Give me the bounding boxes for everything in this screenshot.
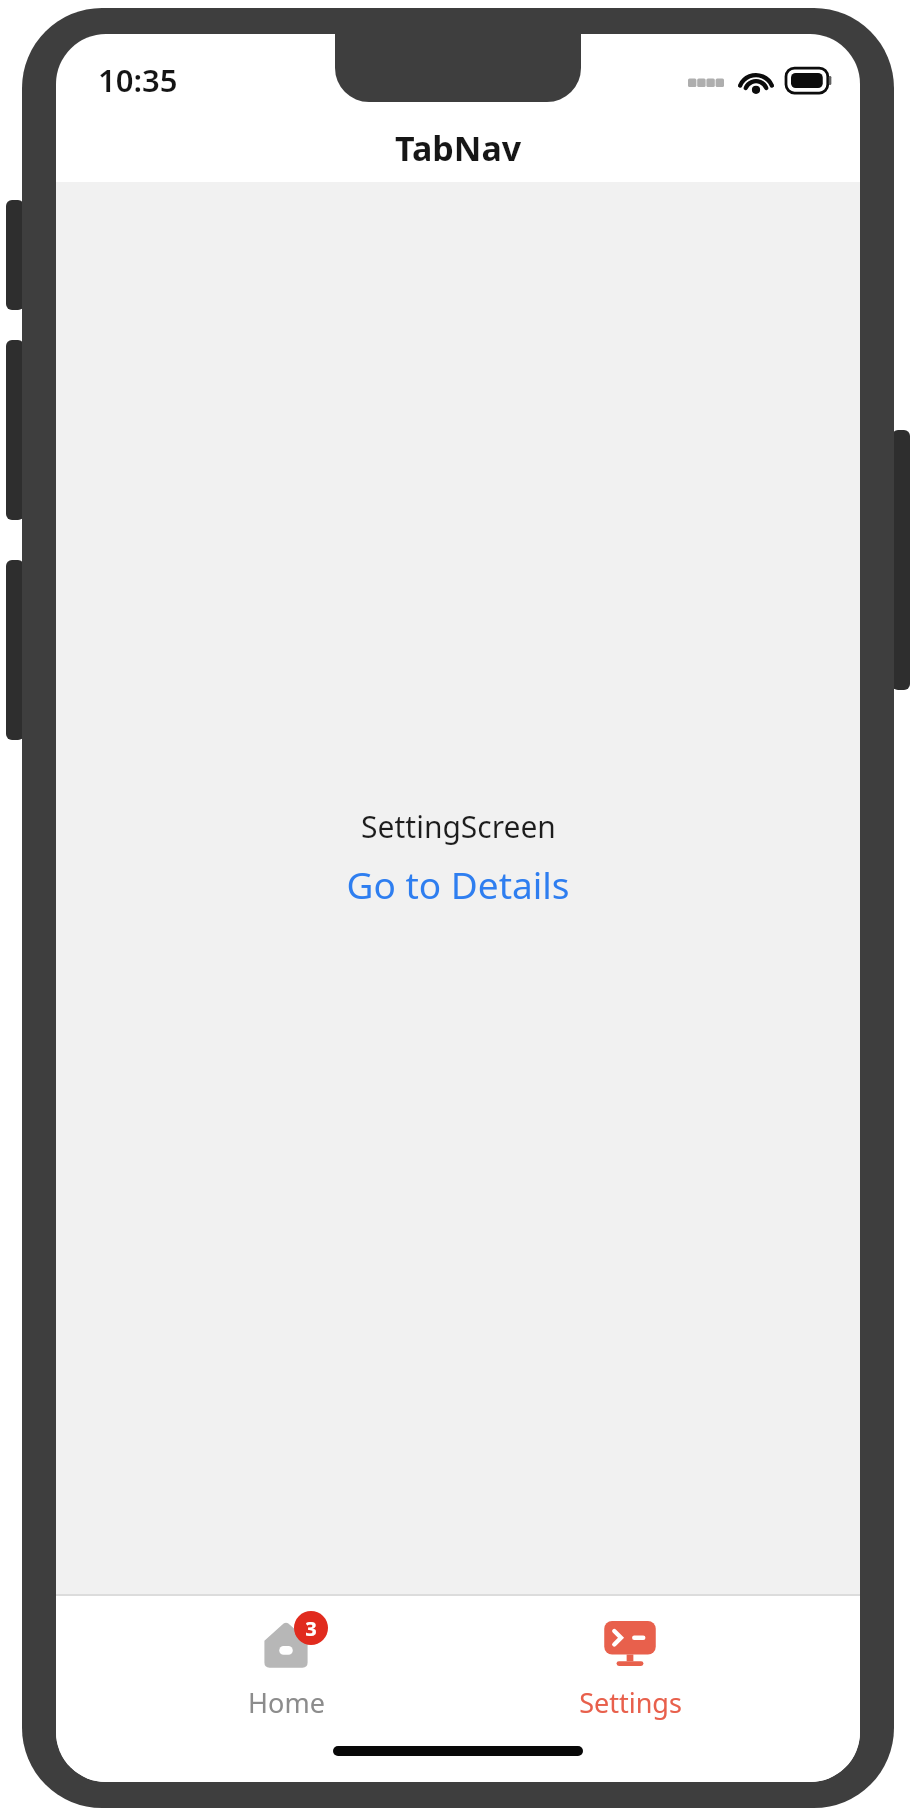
staticText: 10:35: [98, 59, 178, 101]
button[interactable]: Home: [171, 1610, 401, 1725]
staticText: Settings: [579, 1684, 682, 1721]
staticText: TabNav: [395, 125, 522, 171]
button[interactable]: Settings: [515, 1610, 745, 1725]
staticText: 3: [305, 1615, 317, 1642]
staticText: Home: [248, 1684, 325, 1721]
staticText: SettingScreen: [361, 806, 556, 847]
button[interactable]: Go to Details: [340, 857, 576, 911]
staticText: Go to Details: [346, 859, 570, 909]
